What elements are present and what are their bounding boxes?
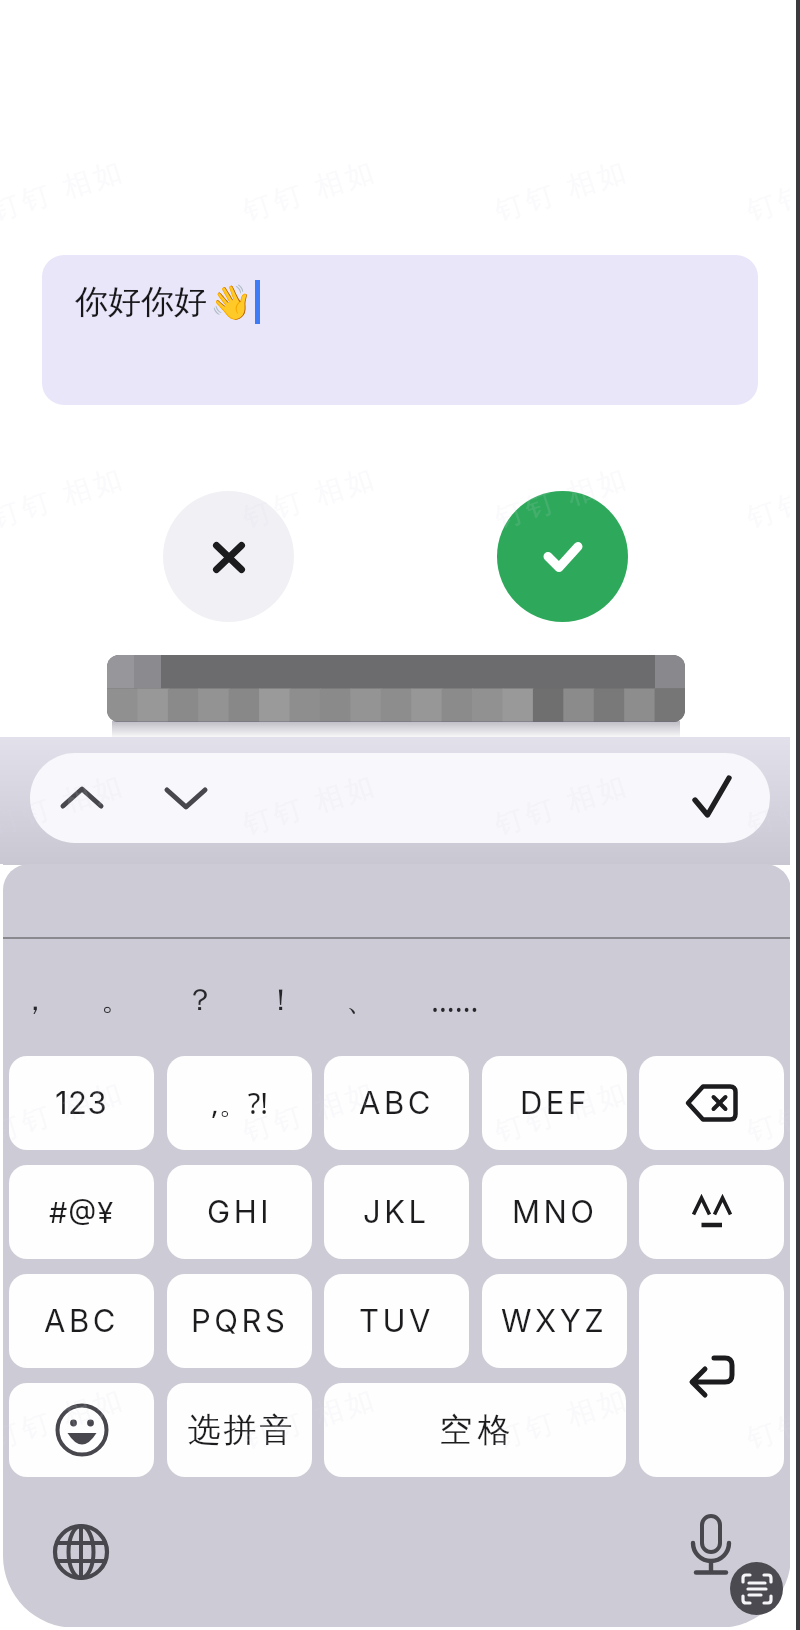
staticText: 钉钉 相如 bbox=[238, 1377, 382, 1457]
staticText: 钉钉 相如 bbox=[238, 1070, 382, 1150]
button[interactable] bbox=[47, 1518, 115, 1586]
button[interactable]: 选拼音 bbox=[167, 1383, 312, 1477]
staticText: ,。?! bbox=[211, 1083, 269, 1123]
staticText: 选拼音 bbox=[186, 1409, 294, 1451]
staticText: 钉钉 相如 bbox=[0, 763, 130, 843]
button[interactable]: 、 bbox=[316, 976, 406, 1024]
staticText: JKL bbox=[363, 1193, 430, 1231]
staticText: 钉钉 相如 bbox=[742, 456, 800, 536]
button[interactable] bbox=[163, 491, 294, 622]
staticText: 、 bbox=[346, 981, 376, 1019]
staticText: 👋 bbox=[210, 282, 253, 322]
staticText: ABC bbox=[44, 1302, 119, 1340]
staticText: PQRS bbox=[191, 1302, 289, 1340]
button[interactable]: ,。?! bbox=[167, 1056, 312, 1150]
button[interactable] bbox=[497, 491, 628, 622]
button[interactable]: ， bbox=[0, 976, 80, 1024]
button[interactable] bbox=[730, 1562, 783, 1615]
button[interactable]: DEF bbox=[482, 1056, 627, 1150]
staticText: 你好你好 bbox=[75, 281, 207, 323]
button[interactable]: ？ bbox=[155, 976, 245, 1024]
button[interactable]: 。 bbox=[71, 976, 161, 1024]
staticText: 钉钉 相如 bbox=[490, 1070, 634, 1150]
staticText: 钉钉 相如 bbox=[490, 456, 634, 536]
staticText: 钉钉 相如 bbox=[0, 1070, 130, 1150]
staticText: 空格 bbox=[437, 1409, 513, 1451]
button[interactable]: ABC bbox=[9, 1274, 154, 1368]
button[interactable]: ABC bbox=[324, 1056, 469, 1150]
staticText: GHI bbox=[207, 1193, 272, 1231]
staticText: TUV bbox=[359, 1302, 434, 1340]
staticText: 钉钉 相如 bbox=[742, 763, 800, 843]
button[interactable] bbox=[46, 762, 118, 834]
staticText: DEF bbox=[520, 1084, 590, 1122]
button[interactable]: JKL bbox=[324, 1165, 469, 1259]
button[interactable] bbox=[639, 1165, 784, 1259]
button[interactable] bbox=[150, 762, 222, 834]
staticText: 钉钉 相如 bbox=[742, 149, 800, 229]
button[interactable]: GHI bbox=[167, 1165, 312, 1259]
staticText: ， bbox=[20, 981, 50, 1019]
button[interactable]: …… bbox=[410, 976, 500, 1024]
button[interactable]: 空格 bbox=[324, 1383, 626, 1477]
button[interactable] bbox=[639, 1274, 784, 1477]
staticText: 钉钉 相如 bbox=[742, 1070, 800, 1150]
button[interactable]: WXYZ bbox=[482, 1274, 627, 1368]
button[interactable] bbox=[677, 1510, 745, 1578]
staticText: 123 bbox=[55, 1084, 108, 1122]
staticText: 。 bbox=[101, 981, 131, 1019]
staticText: 钉钉 相如 bbox=[490, 1377, 634, 1457]
button[interactable]: 123 bbox=[9, 1056, 154, 1150]
staticText: 钉钉 相如 bbox=[742, 1377, 800, 1457]
staticText: MNO bbox=[512, 1193, 598, 1231]
button[interactable]: ！ bbox=[236, 976, 326, 1024]
staticText: 钉钉 相如 bbox=[0, 1377, 130, 1457]
staticText: WXYZ bbox=[501, 1302, 608, 1340]
staticText: …… bbox=[431, 980, 479, 1021]
button[interactable]: 你好你好 bbox=[42, 255, 758, 405]
button[interactable]: PQRS bbox=[167, 1274, 312, 1368]
staticText: ！ bbox=[266, 981, 296, 1019]
staticText: 钉钉 相如 bbox=[238, 456, 382, 536]
staticText: #@¥ bbox=[49, 1195, 115, 1230]
staticText: ABC bbox=[359, 1084, 434, 1122]
button[interactable]: TUV bbox=[324, 1274, 469, 1368]
button[interactable] bbox=[676, 762, 748, 834]
button[interactable] bbox=[9, 1383, 154, 1477]
button[interactable] bbox=[639, 1056, 784, 1150]
button[interactable]: #@¥ bbox=[9, 1165, 154, 1259]
staticText: ？ bbox=[185, 981, 215, 1019]
button[interactable]: MNO bbox=[482, 1165, 627, 1259]
